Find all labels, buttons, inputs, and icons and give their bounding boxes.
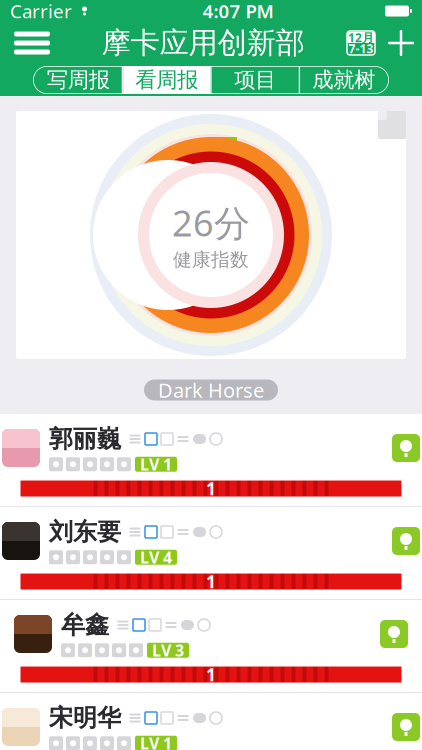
button[interactable]: Give tree to member [380, 620, 408, 648]
staticText: 4:07 PM [202, 0, 273, 23]
button[interactable]: 成就树 [299, 66, 387, 94]
button[interactable]: Menu [0, 22, 64, 64]
staticText: 1 [206, 663, 216, 686]
staticText: 成就树 [312, 67, 375, 93]
staticText: LV 4 [140, 547, 172, 568]
staticText: 项目 [234, 67, 276, 93]
button[interactable]: 宋明华 [0, 693, 422, 750]
staticText: 7-13 [348, 40, 373, 56]
button[interactable]: 郭丽巍 [0, 414, 422, 507]
staticText: LV 1 [140, 733, 172, 750]
staticText: 1 [206, 570, 216, 593]
staticText: LV 3 [152, 640, 184, 661]
button[interactable]: Give tree to member [392, 527, 420, 555]
staticText: 写周报 [47, 67, 110, 93]
button[interactable]: Week of December 7 to 13 [342, 22, 380, 64]
button[interactable]: 写周报 [35, 66, 122, 94]
button[interactable]: Give tree to member [392, 713, 420, 741]
staticText: Dark Horse [158, 377, 264, 403]
button[interactable]: 项目 [210, 66, 299, 94]
button[interactable]: 刘东要 [0, 507, 422, 600]
staticText: 12月 [348, 29, 374, 45]
staticText: 刘东要 [49, 517, 121, 547]
staticText: 健康指数 [173, 248, 249, 271]
button[interactable]: Add [380, 22, 422, 64]
staticText: 26分 [172, 199, 250, 246]
staticText: 看周报 [135, 67, 198, 93]
staticText: 郭丽巍 [49, 424, 121, 454]
button[interactable]: 看周报 [122, 66, 210, 94]
button[interactable]: Give tree to member [392, 434, 420, 462]
staticText: 宋明华 [49, 703, 121, 733]
button[interactable]: 牟鑫 [0, 600, 422, 693]
staticText: LV 1 [140, 454, 172, 475]
staticText: 1 [206, 477, 216, 500]
staticText: Carrier [10, 0, 72, 23]
staticText: 摩卡应用创新部 [101, 25, 304, 61]
staticText: 牟鑫 [61, 610, 109, 640]
